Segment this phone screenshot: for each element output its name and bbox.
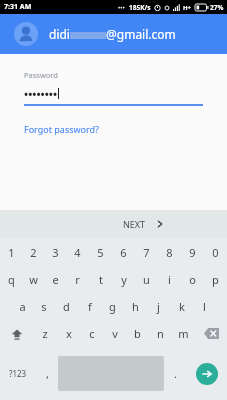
- button[interactable]: Forgot password?: [24, 123, 100, 135]
- button[interactable]: 6: [112, 238, 135, 266]
- staticText: 7: [143, 245, 150, 260]
- button[interactable]: 2: [22, 238, 44, 266]
- staticText: z: [42, 326, 48, 341]
- button[interactable]: 3: [44, 238, 66, 266]
- button[interactable]: 7: [135, 238, 158, 266]
- button[interactable]: r: [66, 266, 89, 293]
- button[interactable]: p: [204, 266, 227, 293]
- button[interactable]: o: [181, 266, 204, 293]
- button[interactable]: h: [124, 293, 147, 320]
- button[interactable]: 4: [66, 238, 89, 266]
- staticText: .: [174, 366, 177, 381]
- button[interactable]: q: [0, 266, 22, 293]
- staticText: d: [63, 299, 70, 314]
- staticText: 2: [30, 245, 37, 260]
- staticText: 4: [74, 245, 81, 260]
- staticText: Forgot password?: [24, 123, 100, 135]
- staticText: 9: [189, 245, 196, 260]
- staticText: NEXT: [123, 218, 146, 230]
- staticText: 5: [97, 245, 104, 260]
- staticText: p: [212, 272, 219, 287]
- staticText: @gmail.com: [106, 26, 176, 42]
- staticText: l: [203, 299, 206, 314]
- button[interactable]: b: [126, 320, 149, 347]
- staticText: Password: [24, 70, 58, 80]
- staticText: k: [179, 299, 185, 314]
- staticText: s: [41, 299, 47, 314]
- staticText: a: [19, 299, 26, 314]
- button[interactable]: Shift: [0, 320, 33, 347]
- staticText: H+: [183, 4, 192, 12]
- button[interactable]: f: [78, 293, 101, 320]
- staticText: didi: [49, 26, 70, 42]
- staticText: 27%: [210, 3, 224, 12]
- button[interactable]: Enter: [186, 347, 227, 400]
- staticText: q: [8, 272, 15, 287]
- button[interactable]: 8: [158, 238, 181, 266]
- button[interactable]: j: [147, 293, 170, 320]
- button[interactable]: g: [101, 293, 124, 320]
- staticText: e: [52, 272, 59, 287]
- staticText: 7:31 AM: [4, 2, 32, 12]
- staticText: t: [99, 272, 103, 287]
- button[interactable]: 1: [0, 238, 22, 266]
- staticText: 6: [120, 245, 127, 260]
- staticText: x: [66, 326, 72, 341]
- button[interactable]: v: [103, 320, 126, 347]
- staticText: m: [178, 326, 189, 341]
- button[interactable]: z: [33, 320, 57, 347]
- staticText: •••: [118, 4, 125, 12]
- button[interactable]: y: [112, 266, 135, 293]
- staticText: w: [29, 272, 38, 287]
- button[interactable]: i: [158, 266, 181, 293]
- staticText: 3: [52, 245, 59, 260]
- button[interactable]: didi: [0, 14, 227, 54]
- staticText: ?123: [9, 368, 27, 379]
- staticText: u: [143, 272, 150, 287]
- button[interactable]: d: [55, 293, 78, 320]
- button[interactable]: s: [33, 293, 55, 320]
- button[interactable]: c: [80, 320, 103, 347]
- button[interactable]: a: [11, 293, 33, 320]
- button[interactable]: x: [57, 320, 80, 347]
- button[interactable]: .: [164, 347, 186, 400]
- button[interactable]: w: [22, 266, 44, 293]
- button[interactable]: Backspace: [195, 320, 227, 347]
- staticText: ••••••••: [24, 86, 58, 101]
- button[interactable]: u: [135, 266, 158, 293]
- button[interactable]: t: [89, 266, 112, 293]
- staticText: r: [75, 272, 80, 287]
- button[interactable]: l: [193, 293, 216, 320]
- staticText: g: [109, 299, 116, 314]
- staticText: y: [121, 272, 127, 287]
- staticText: i: [168, 272, 171, 287]
- button[interactable]: 0: [204, 238, 227, 266]
- staticText: h: [132, 299, 139, 314]
- button[interactable]: ?123: [0, 347, 36, 400]
- staticText: 1: [8, 245, 15, 260]
- staticText: f: [88, 299, 92, 314]
- button[interactable]: 5: [89, 238, 112, 266]
- button[interactable]: ,: [36, 347, 58, 400]
- button[interactable]: k: [170, 293, 193, 320]
- staticText: n: [157, 326, 164, 341]
- button[interactable]: m: [172, 320, 195, 347]
- staticText: ,: [46, 366, 49, 381]
- staticText: b: [134, 326, 141, 341]
- staticText: 0: [212, 245, 219, 260]
- button[interactable]: NEXT: [115, 214, 172, 234]
- staticText: c: [89, 326, 95, 341]
- staticText: o: [189, 272, 196, 287]
- staticText: v: [112, 326, 118, 341]
- button[interactable]: 9: [181, 238, 204, 266]
- staticText: 185K/s: [129, 3, 151, 12]
- staticText: j: [157, 299, 160, 314]
- button[interactable]: e: [44, 266, 66, 293]
- staticText: 8: [166, 245, 173, 260]
- button[interactable]: n: [149, 320, 172, 347]
